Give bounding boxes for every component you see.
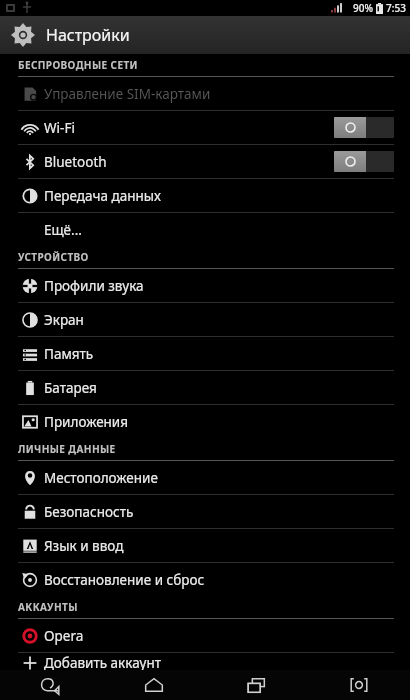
button[interactable]: Местоположение <box>0 461 410 494</box>
staticText: Передача данных <box>44 187 161 205</box>
button[interactable]: Opera <box>0 619 410 652</box>
staticText: Батарея <box>44 379 97 397</box>
staticText: Восстановление и сброс <box>44 571 205 589</box>
button[interactable]: Добавить аккаунт <box>0 653 410 672</box>
staticText: АККАУНТЫ <box>18 600 78 614</box>
staticText: БЕСПРОВОДНЫЕ СЕТИ <box>18 58 138 72</box>
staticText: Управление SIM-картами <box>44 85 211 103</box>
button[interactable]: Settings <box>0 16 410 54</box>
staticText: Wi-Fi <box>44 119 75 137</box>
button[interactable]: Передача данных <box>0 179 410 212</box>
staticText: Добавить аккаунт <box>44 654 161 672</box>
button[interactable]: Управление SIM-картами <box>0 77 410 110</box>
button[interactable]: Ещё... <box>0 213 410 246</box>
button[interactable]: Toggle <box>334 117 394 138</box>
staticText: 7:53 <box>386 1 406 15</box>
button[interactable]: Экран <box>0 303 410 336</box>
staticText: Opera <box>44 627 84 645</box>
button[interactable]: Восстановление и сброс <box>0 563 410 596</box>
other: Settings <box>8 20 38 50</box>
staticText: Местоположение <box>44 469 158 487</box>
staticText: УСТРОЙСТВО <box>18 250 89 264</box>
staticText: Приложения <box>44 413 129 431</box>
button[interactable]: Toggle <box>334 151 394 172</box>
staticText: ЛИЧНЫЕ ДАННЫЕ <box>18 442 116 456</box>
staticText: Ещё... <box>44 221 82 239</box>
staticText: Профили звука <box>44 277 144 295</box>
button[interactable]: Back <box>24 670 78 700</box>
button[interactable]: Home <box>127 670 181 700</box>
staticText: 90% <box>353 1 373 15</box>
button[interactable]: Recents <box>229 670 283 700</box>
staticText: Экран <box>44 311 84 329</box>
button[interactable]: Wi-Fi <box>0 111 410 144</box>
staticText: Безопасность <box>44 503 134 521</box>
button[interactable]: Screenshot <box>332 670 386 700</box>
button[interactable]: Приложения <box>0 405 410 438</box>
button[interactable]: Батарея <box>0 371 410 404</box>
staticText: Язык и ввод <box>44 537 124 555</box>
staticText: Bluetooth <box>44 153 107 171</box>
button[interactable]: Безопасность <box>0 495 410 528</box>
button[interactable]: Язык и ввод <box>0 529 410 562</box>
staticText: Настройки <box>46 24 130 46</box>
button[interactable]: Bluetooth <box>0 145 410 178</box>
button[interactable]: Профили звука <box>0 269 410 302</box>
button[interactable]: Память <box>0 337 410 370</box>
staticText: Память <box>44 345 94 363</box>
